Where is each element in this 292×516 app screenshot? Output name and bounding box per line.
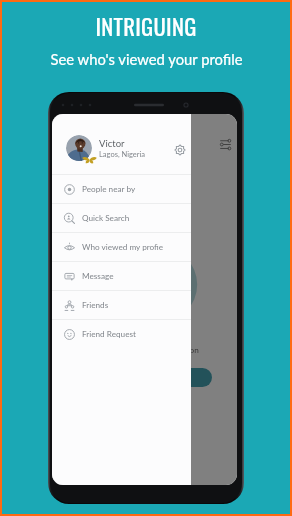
button[interactable] xyxy=(172,368,212,387)
button[interactable]: Quick Search xyxy=(52,204,191,232)
button[interactable]: People near by xyxy=(52,175,191,203)
staticText: Quick Search xyxy=(82,213,130,223)
staticText: See who's viewed your profile xyxy=(50,50,243,68)
staticText: Friends xyxy=(82,300,109,310)
staticText: Location xyxy=(168,345,199,355)
button[interactable]: Message xyxy=(52,262,191,290)
staticText: INTRIGUING xyxy=(95,9,197,42)
button[interactable]: Friends xyxy=(52,291,191,319)
button[interactable]: Who viewed my profie xyxy=(52,233,191,261)
button[interactable]: Friend Request xyxy=(52,320,191,348)
button[interactable]: Victor xyxy=(52,114,191,174)
staticText: Lagos, Nigeria xyxy=(99,150,146,159)
staticText: Friend Request xyxy=(82,329,136,339)
staticText: Victor xyxy=(99,138,125,149)
button[interactable]: Settings xyxy=(174,144,186,156)
staticText: Who viewed my profie xyxy=(82,242,164,252)
staticText: People near by xyxy=(82,184,136,194)
button[interactable]: Filter xyxy=(220,139,231,150)
staticText: Message xyxy=(82,271,114,281)
